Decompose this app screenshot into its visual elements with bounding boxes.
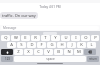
button[interactable]: V	[44, 49, 53, 55]
button[interactable]: R	[31, 35, 40, 41]
staticText: A	[10, 42, 13, 48]
staticText: P	[94, 35, 97, 41]
staticText: space	[46, 57, 55, 61]
button[interactable]: F	[37, 42, 46, 48]
button[interactable]: I	[71, 35, 80, 41]
staticText: V	[47, 49, 50, 55]
staticText: E	[24, 35, 27, 41]
staticText: B	[57, 49, 60, 55]
staticText: traffic. On our way	[2, 13, 36, 18]
staticText: Y	[54, 35, 57, 41]
button[interactable]: H	[57, 42, 66, 48]
button[interactable]: return	[87, 56, 99, 62]
staticText: W	[14, 35, 18, 41]
button[interactable]: L	[87, 42, 96, 48]
staticText: Message	[3, 26, 17, 30]
staticText: C	[37, 49, 40, 55]
button[interactable]: 123	[1, 56, 13, 62]
button[interactable]: S	[17, 42, 26, 48]
button[interactable]: Q	[1, 35, 10, 41]
staticText: S	[20, 42, 23, 48]
staticText: M	[77, 49, 81, 55]
staticText: return	[89, 57, 97, 61]
button[interactable]: B	[54, 49, 63, 55]
staticText: K	[80, 42, 83, 48]
button[interactable]: N	[64, 49, 73, 55]
button[interactable]: O	[81, 35, 90, 41]
staticText: H	[60, 42, 64, 48]
staticText: T	[44, 35, 47, 41]
staticText: Today 4:51 PM	[39, 5, 61, 9]
button[interactable]: W	[11, 35, 20, 41]
button[interactable]: Y	[51, 35, 60, 41]
button[interactable]: Message	[1, 26, 99, 30]
staticText: U	[64, 35, 68, 41]
button[interactable]: Z	[14, 49, 23, 55]
staticText: 123	[5, 57, 10, 61]
button[interactable]: A	[7, 42, 16, 48]
button[interactable]: T	[41, 35, 50, 41]
button[interactable]: D	[27, 42, 36, 48]
button[interactable]: C	[34, 49, 43, 55]
button[interactable]: X	[24, 49, 33, 55]
button[interactable]: Backspace	[84, 49, 96, 55]
staticText: O	[84, 35, 88, 41]
staticText: L	[90, 42, 93, 48]
staticText: R	[34, 35, 37, 41]
staticText: N	[67, 49, 71, 55]
button[interactable]: traffic. On our way	[0, 12, 38, 19]
button[interactable]: M	[74, 49, 83, 55]
staticText: I	[75, 35, 77, 41]
button[interactable]: Shift	[1, 49, 13, 55]
staticText: J	[71, 42, 73, 48]
button[interactable]: J	[67, 42, 76, 48]
staticText: Q	[4, 35, 8, 41]
staticText: D	[30, 42, 34, 48]
staticText: G	[50, 42, 54, 48]
button[interactable]: P	[91, 35, 99, 41]
button[interactable]: space	[14, 56, 86, 62]
button[interactable]: G	[47, 42, 56, 48]
staticText: F	[40, 42, 43, 48]
staticText: X	[27, 49, 30, 55]
button[interactable]: E	[21, 35, 30, 41]
staticText: Z	[17, 49, 20, 55]
button[interactable]: K	[77, 42, 86, 48]
button[interactable]: U	[61, 35, 70, 41]
